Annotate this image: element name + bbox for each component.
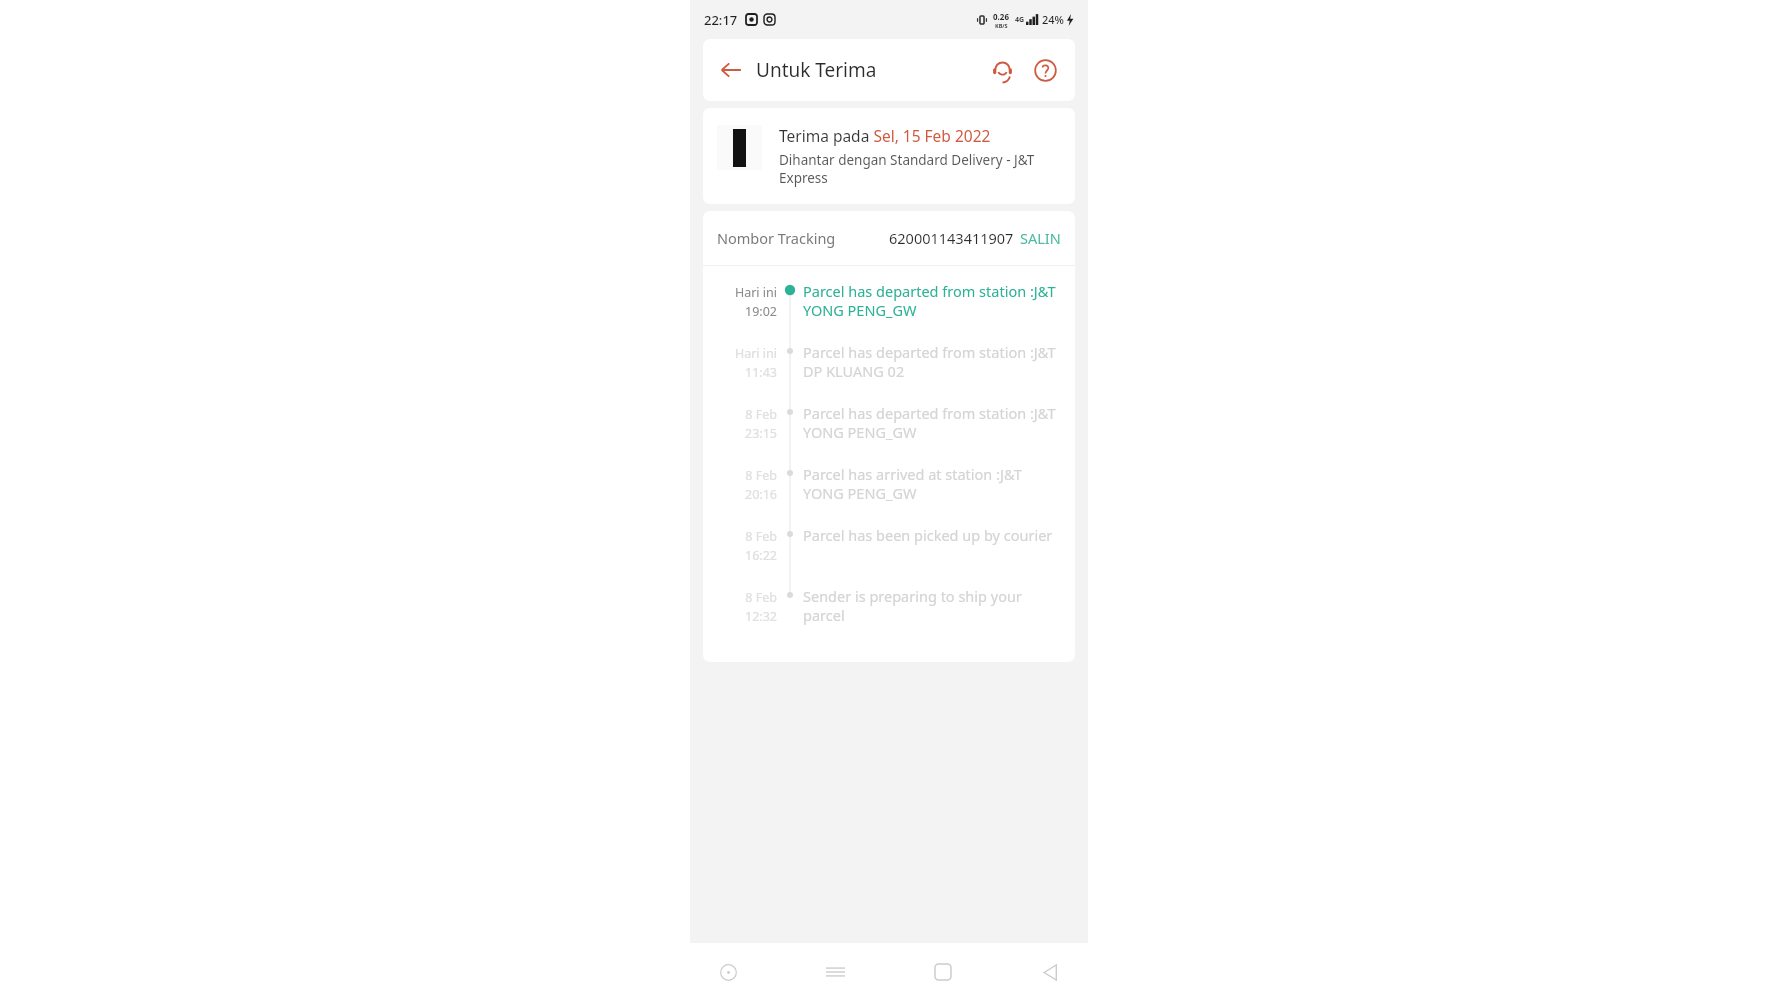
staticText: Untuk Terima xyxy=(756,57,877,83)
button[interactable]: Back xyxy=(716,55,746,85)
staticText: 24% xyxy=(1042,12,1064,27)
staticText: 8 Feb xyxy=(745,589,777,606)
button[interactable]: Back xyxy=(1028,950,1072,994)
staticText: 8 Feb xyxy=(745,528,777,545)
staticText: 23:15 xyxy=(745,425,777,442)
staticText: 19:02 xyxy=(745,303,777,320)
staticText: Parcel has arrived at station :J&T YONG … xyxy=(803,464,1061,503)
button[interactable]: Help xyxy=(1029,54,1061,86)
staticText: 620001143411907 xyxy=(889,228,1014,248)
staticText: 8 Feb xyxy=(745,467,777,484)
staticText: 11:43 xyxy=(745,364,777,381)
staticText: Hari ini xyxy=(734,284,777,301)
button[interactable]: Assistant xyxy=(706,950,750,994)
staticText: Nombor Tracking xyxy=(717,228,836,248)
staticText: KB/S xyxy=(995,22,1008,29)
staticText: Terima pada Sel, 15 Feb 2022 xyxy=(779,125,991,146)
staticText: 8 Feb xyxy=(745,406,777,423)
staticText: 22:17 xyxy=(704,11,738,29)
staticText: 4G xyxy=(1015,15,1025,25)
staticText: Dihantar dengan Standard Delivery - J&T … xyxy=(779,151,1061,187)
staticText: 20:16 xyxy=(745,486,777,503)
staticText: Parcel has departed from station :J&T YO… xyxy=(803,281,1061,320)
staticText: Parcel has departed from station :J&T YO… xyxy=(803,403,1061,442)
button[interactable]: Recents xyxy=(813,950,857,994)
staticText: Sender is preparing to ship your parcel xyxy=(803,586,1061,625)
staticText: SALIN xyxy=(1020,228,1061,248)
staticText: 16:22 xyxy=(745,547,777,564)
button[interactable]: Terima pada Sel, 15 Feb 2022 xyxy=(703,108,1075,204)
staticText: Parcel has departed from station :J&T DP… xyxy=(803,342,1061,381)
staticText: Parcel has been picked up by courier xyxy=(803,525,1053,545)
staticText: 12:32 xyxy=(745,608,777,625)
staticText: 0.26 xyxy=(993,11,1009,22)
button[interactable]: Home xyxy=(921,950,965,994)
button[interactable]: Customer service xyxy=(986,54,1018,86)
staticText: Hari ini xyxy=(734,345,777,362)
button[interactable]: Nombor Tracking xyxy=(703,211,1075,265)
